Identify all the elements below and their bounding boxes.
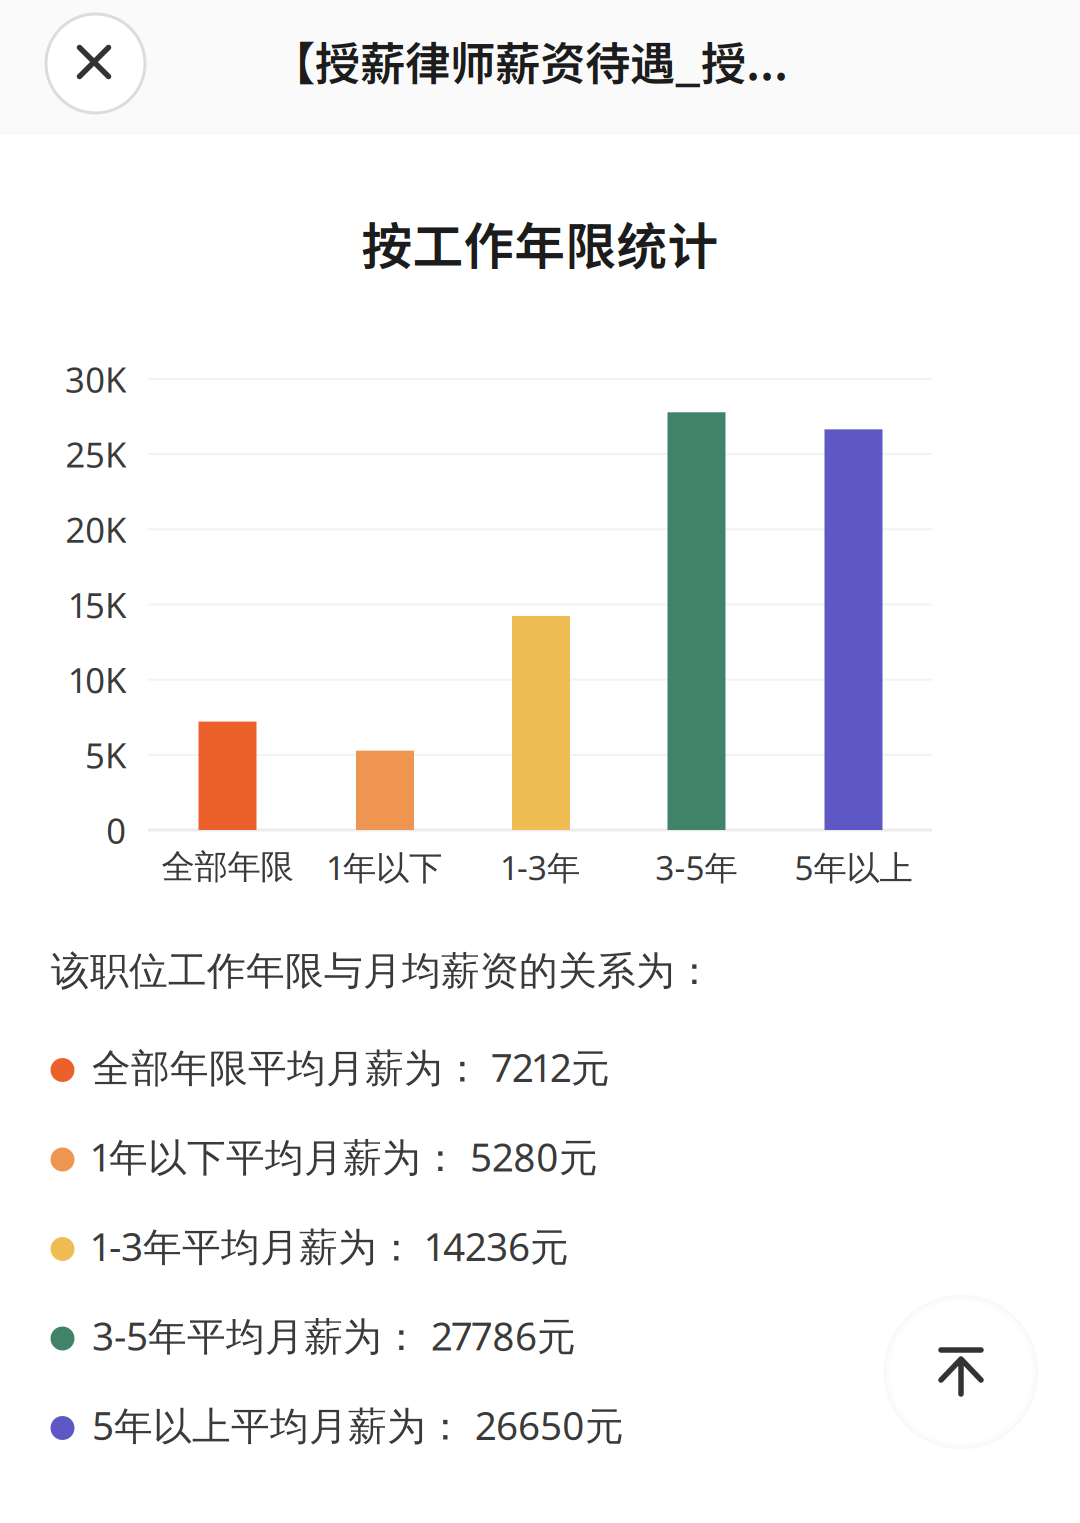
staticText: 15K [70,581,126,627]
staticText: 【授薪律师薪资待遇_授... [270,28,788,93]
staticText: 5年以上平均月薪为： 26650元 [92,1399,624,1451]
staticText: 25K [66,431,126,477]
staticText: 全部年限 [161,846,293,887]
staticText: 该职位工作年限与月均薪资的关系为： [51,947,714,995]
staticText: 1-3年平均月薪为： 14236元 [92,1220,569,1272]
staticText: 按工作年限统计 [361,206,718,280]
staticText: 1-3年 [502,845,580,889]
button[interactable]: Close [35,3,155,123]
staticText: 0 [106,807,126,853]
staticText: 10K [70,657,126,703]
staticText: 3-5年 [655,845,737,889]
staticText: 30K [65,356,126,402]
staticText: 3-5年平均月薪为： 27786元 [92,1310,576,1361]
button[interactable]: Back to top [876,1287,1046,1457]
staticText: 5K [85,732,126,778]
staticText: 5年以上 [794,845,912,889]
staticText: 20K [66,506,126,552]
staticText: 1年以下 [328,845,442,889]
staticText: 1年以下平均月薪为： 5280元 [92,1131,598,1182]
staticText: 全部年限平均月薪为： 7212元 [92,1041,610,1093]
